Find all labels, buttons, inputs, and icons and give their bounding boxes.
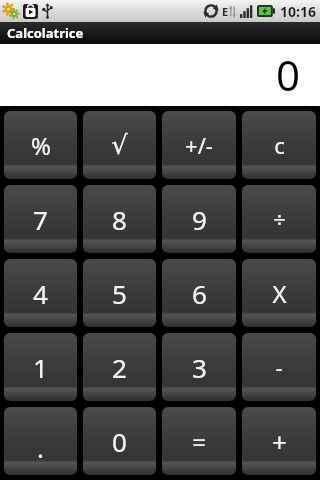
button[interactable]: ÷ [242, 185, 316, 253]
staticText: 1 [33, 350, 48, 385]
staticText: +/- [185, 130, 213, 160]
button[interactable]: = [162, 407, 236, 475]
button[interactable]: 0 [83, 407, 156, 475]
staticText: X [272, 277, 287, 310]
staticText: c [274, 130, 285, 160]
button[interactable]: - [242, 333, 316, 401]
button[interactable]: . [4, 407, 77, 475]
button[interactable]: % [4, 111, 77, 179]
staticText: √ [111, 130, 128, 160]
staticText: 5 [112, 276, 127, 311]
button[interactable]: 7 [4, 185, 77, 253]
staticText: 10:16 [280, 2, 316, 21]
staticText: 4 [33, 276, 48, 311]
staticText: 9 [192, 202, 207, 237]
button[interactable]: X [242, 259, 316, 327]
button[interactable]: 5 [83, 259, 156, 327]
staticText: 6 [192, 276, 207, 311]
staticText: E [222, 4, 229, 19]
button[interactable]: 3 [162, 333, 236, 401]
staticText: 7 [33, 202, 48, 237]
button[interactable]: √ [83, 111, 156, 179]
button[interactable]: 6 [162, 259, 236, 327]
button[interactable]: +/- [162, 111, 236, 179]
button[interactable]: 2 [83, 333, 156, 401]
staticText: 3 [192, 350, 207, 385]
button[interactable]: c [242, 111, 316, 179]
button[interactable]: 4 [4, 259, 77, 327]
button[interactable]: 9 [162, 185, 236, 253]
staticText: + [272, 424, 287, 459]
button[interactable]: 8 [83, 185, 156, 253]
staticText: ÷ [273, 204, 286, 234]
staticText: Calcolatrice [7, 24, 84, 42]
staticText: % [31, 129, 51, 162]
staticText: 0 [112, 424, 127, 459]
staticText: . [37, 430, 44, 465]
staticText: 0 [275, 46, 300, 103]
staticText: 2 [112, 350, 127, 385]
staticText: = [192, 425, 206, 458]
staticText: - [275, 352, 283, 382]
button[interactable]: 1 [4, 333, 77, 401]
staticText: 8 [112, 202, 127, 237]
button[interactable]: + [242, 407, 316, 475]
